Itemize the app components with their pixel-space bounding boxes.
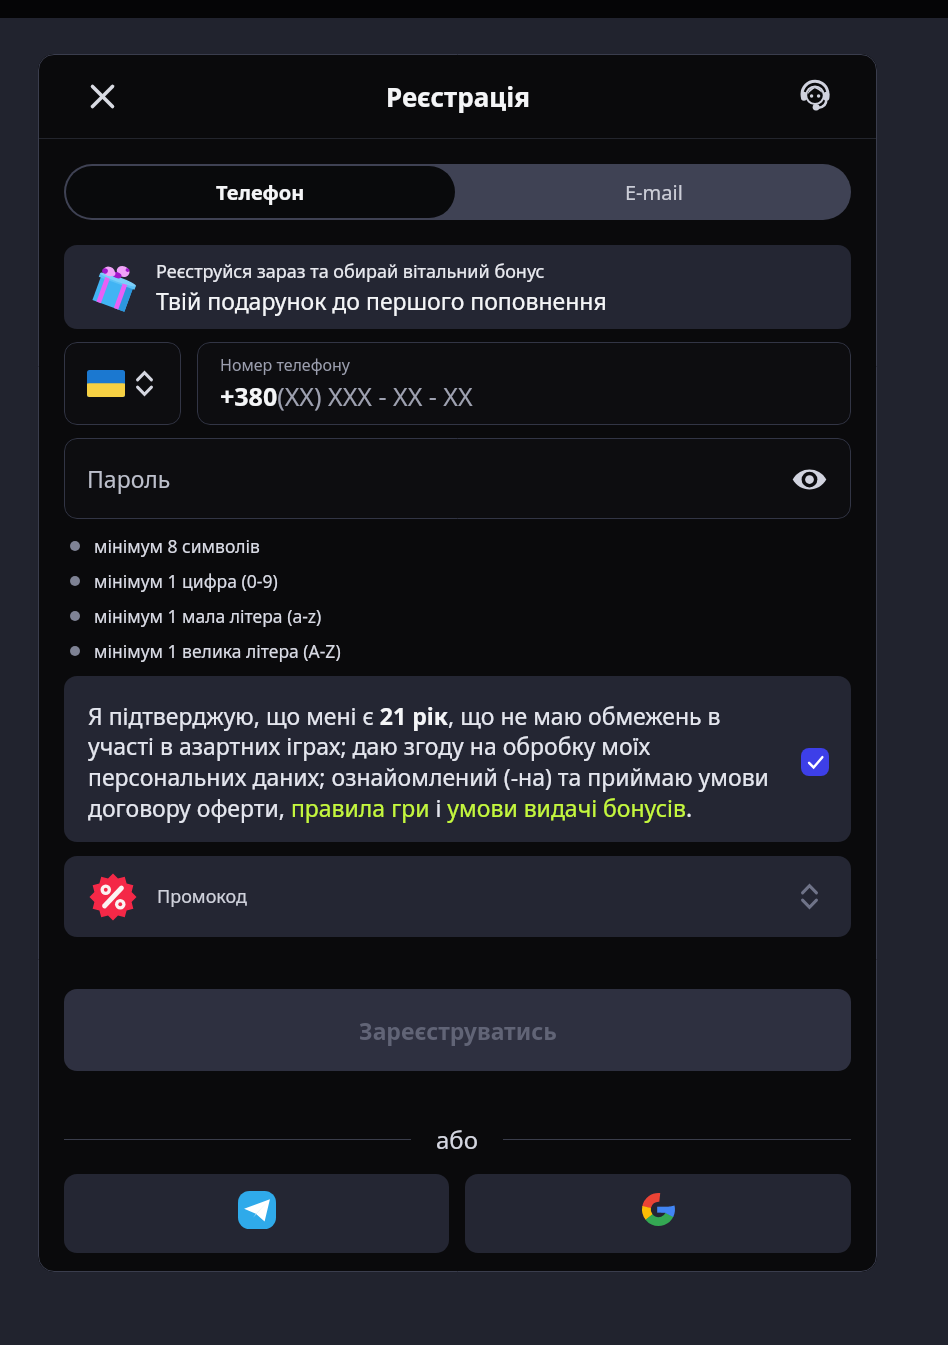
button[interactable]: Зареєструватись	[64, 989, 851, 1071]
staticText: Пароль	[87, 463, 171, 494]
staticText: Зареєструватись	[359, 1015, 557, 1046]
button[interactable]: E-mail	[457, 164, 851, 220]
staticText: Номер телефону	[220, 354, 350, 376]
button[interactable]: Реєструйся зараз та обирай вітальний бон…	[64, 245, 851, 329]
button[interactable]: Show password	[789, 459, 829, 499]
button[interactable]: Close	[80, 74, 124, 118]
button[interactable]: Support	[793, 74, 837, 118]
button[interactable]: Промокод	[64, 856, 851, 937]
staticText: E-mail	[625, 179, 683, 206]
staticText: Телефон	[216, 179, 305, 206]
staticText: Я підтверджую, що мені є 21 рік, що не м…	[88, 700, 792, 824]
button[interactable]: Agree checkbox	[801, 748, 829, 776]
button[interactable]: Пароль	[64, 438, 851, 519]
staticText: Реєструйся зараз та обирай вітальний бон…	[156, 259, 545, 284]
staticText: або	[436, 1123, 478, 1156]
button[interactable]: Select country	[64, 342, 181, 425]
staticText: Промокод	[157, 884, 247, 909]
button[interactable]: Sign up with Telegram	[64, 1174, 449, 1253]
staticText: мінімум 1 мала літера (a-z)	[94, 604, 322, 628]
staticText: мінімум 8 символів	[94, 534, 260, 558]
staticText: Твій подарунок до першого поповнення	[156, 285, 607, 316]
staticText: мінімум 1 цифра (0-9)	[94, 569, 278, 593]
button[interactable]: Телефон	[66, 166, 455, 218]
button[interactable]: Я підтверджую, що мені є 21 рік, що не м…	[64, 676, 851, 842]
staticText: мінімум 1 велика літера (A-Z)	[94, 639, 341, 663]
staticText: +380(XX) XXX - XX - XX	[220, 379, 473, 413]
button[interactable]: Sign up with Google	[465, 1174, 851, 1253]
button[interactable]: Номер телефону	[197, 342, 851, 425]
staticText: Реєстрація	[386, 79, 530, 114]
